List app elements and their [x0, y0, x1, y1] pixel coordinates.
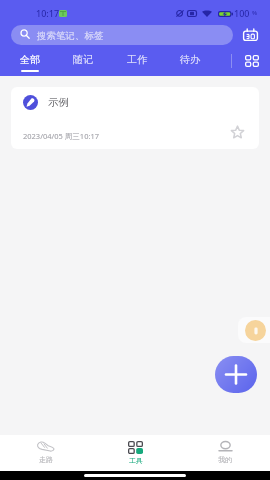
staticText: 随记: [73, 53, 93, 66]
button[interactable]: Calendar: [241, 25, 260, 44]
button[interactable]: Grid layout: [241, 52, 263, 70]
button[interactable]: 走路: [0, 435, 90, 471]
staticText: 2023/04/05 周三10:17: [23, 131, 100, 141]
button[interactable]: 搜索笔记、标签: [11, 25, 233, 45]
staticText: 我的: [218, 455, 232, 464]
staticText: 10:17: [36, 7, 60, 19]
button[interactable]: 全部: [3, 48, 56, 76]
button[interactable]: 工作: [110, 48, 163, 76]
staticText: 工作: [127, 53, 147, 66]
button[interactable]: 示例: [11, 87, 259, 149]
staticText: 搜索笔记、标签: [37, 30, 104, 42]
button[interactable]: 我的: [180, 435, 270, 471]
button[interactable]: Reminder: [238, 317, 270, 343]
staticText: 示例: [48, 96, 69, 109]
staticText: 走路: [39, 455, 53, 464]
staticText: 工具: [129, 456, 143, 465]
button[interactable]: 随记: [56, 48, 109, 76]
staticText: 全部: [20, 53, 40, 66]
button[interactable]: Favourite: [229, 124, 245, 140]
button[interactable]: 工具: [90, 435, 180, 471]
staticText: 100: [234, 7, 250, 19]
button[interactable]: 待办: [163, 48, 216, 76]
staticText: %: [252, 9, 258, 17]
button[interactable]: Add note: [215, 356, 257, 393]
staticText: 待办: [180, 53, 200, 66]
